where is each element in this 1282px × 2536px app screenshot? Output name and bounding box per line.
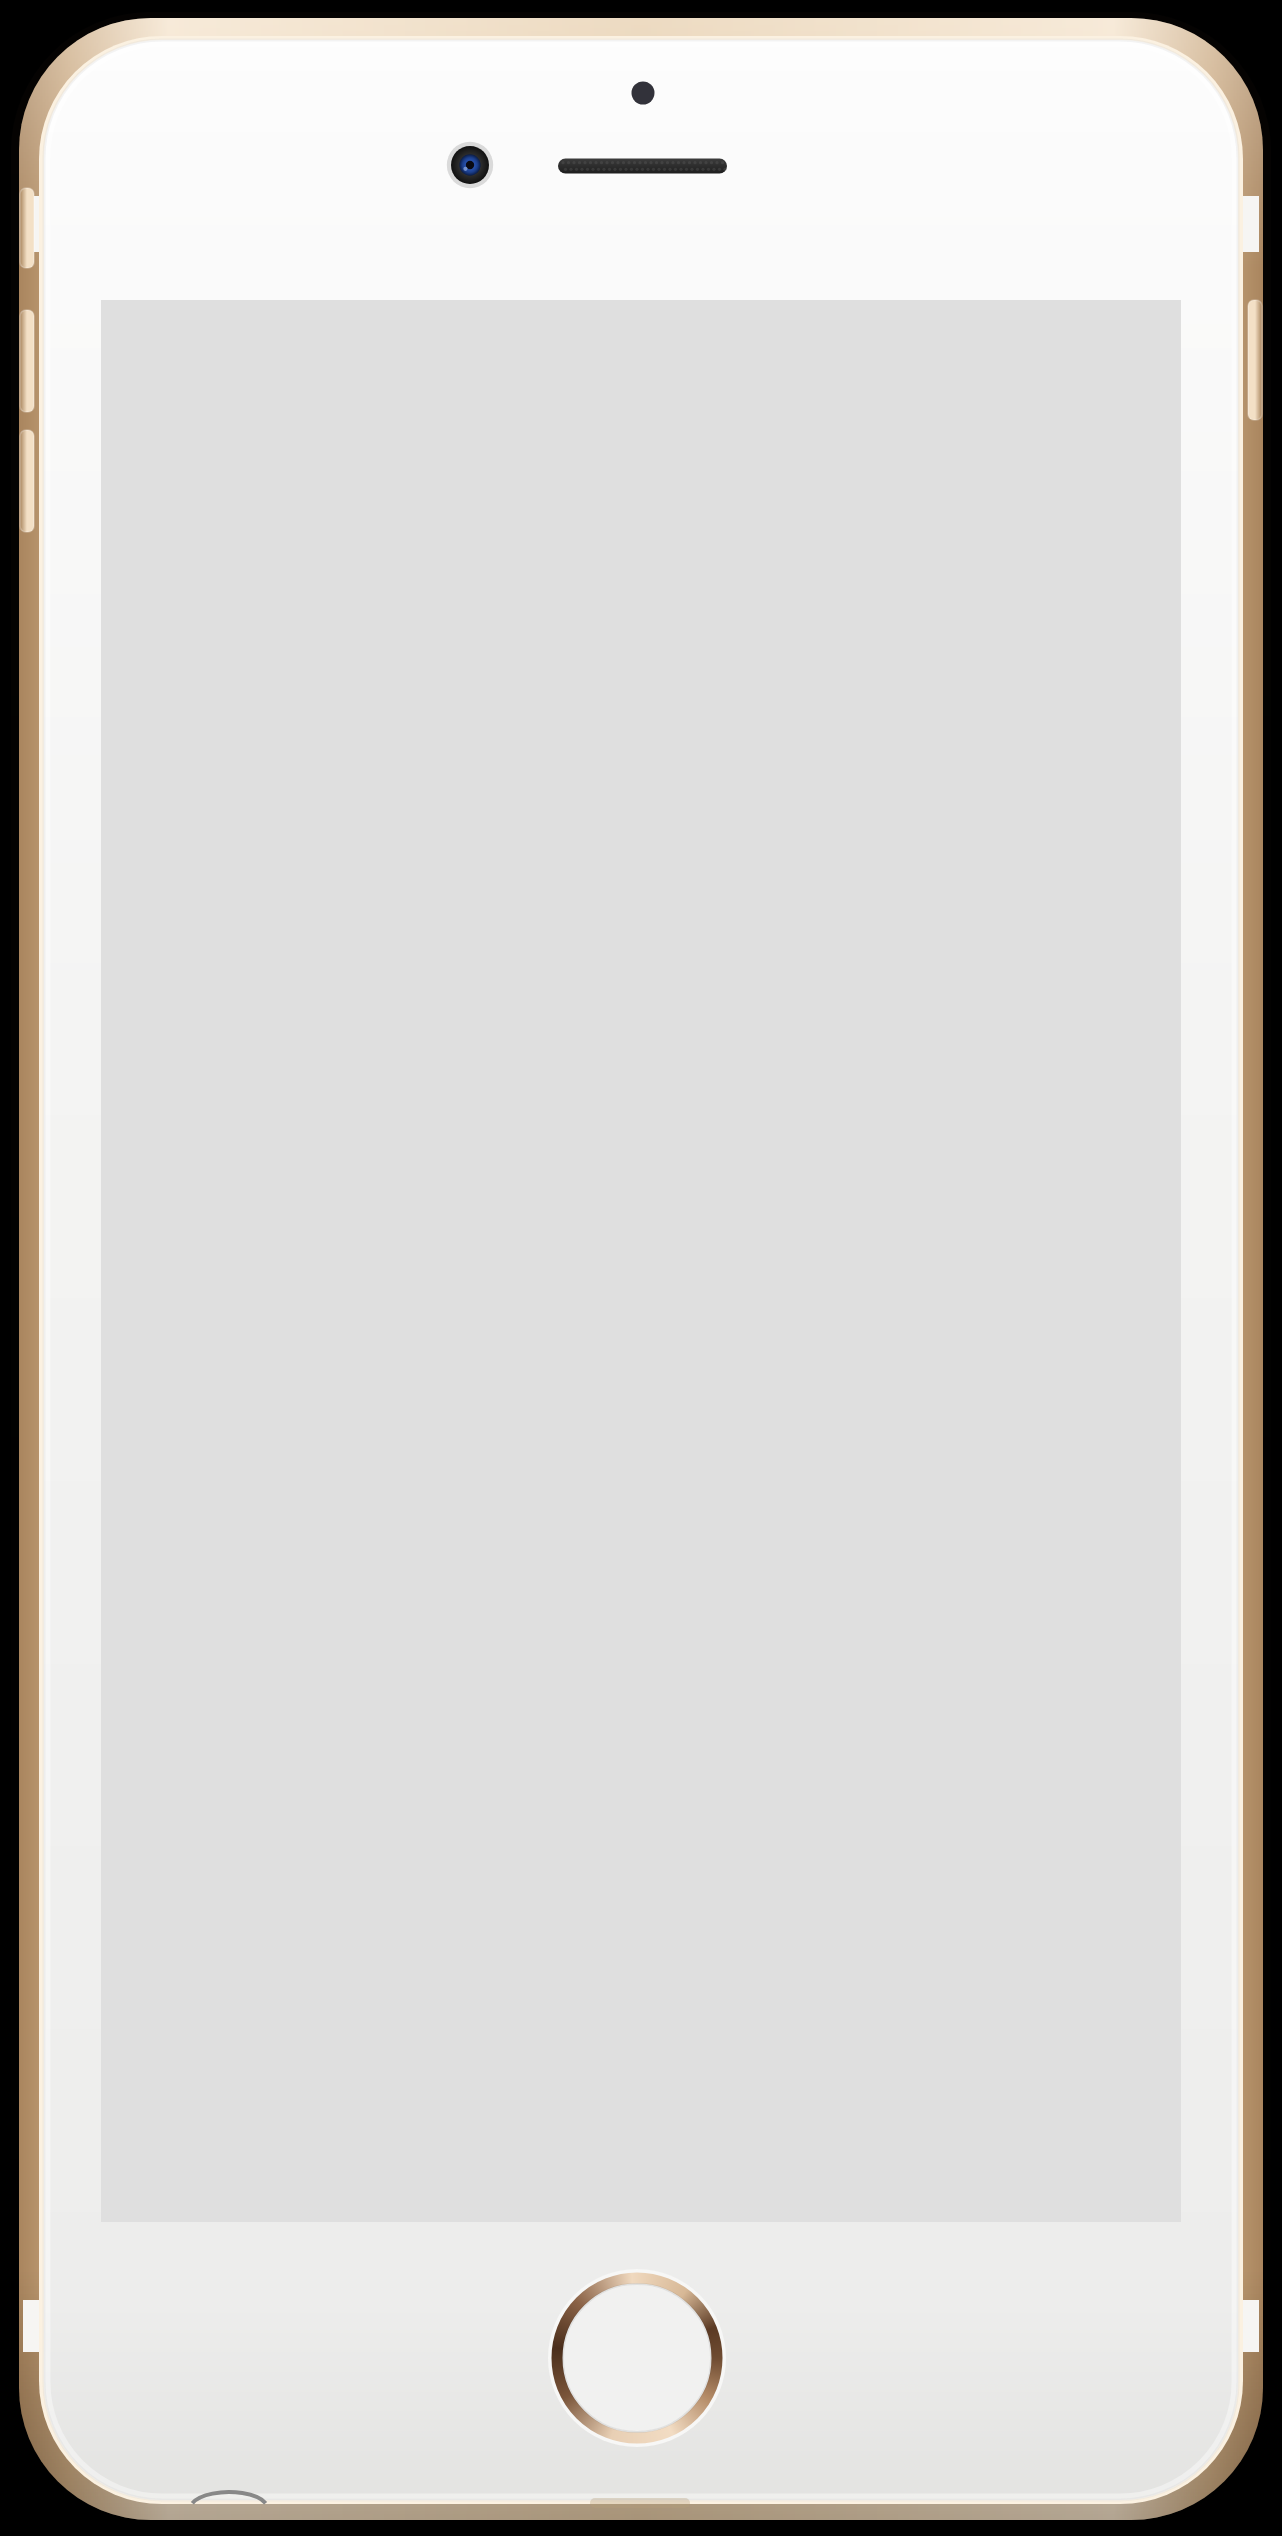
button[interactable]: Gold smartphone device mockup with blank… [0, 0, 1282, 2536]
button[interactable]: Device display [0, 0, 1282, 2536]
